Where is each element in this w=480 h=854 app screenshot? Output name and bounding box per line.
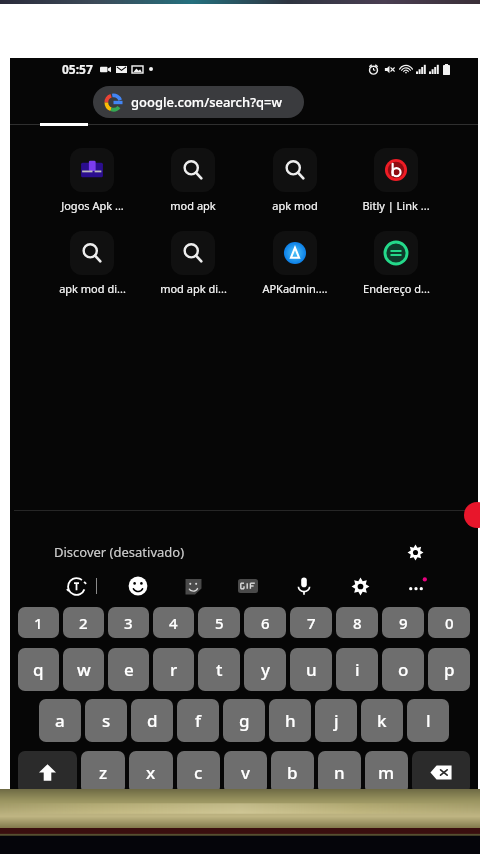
button[interactable]: k — [361, 699, 403, 742]
staticText: p — [444, 658, 455, 681]
button[interactable]: v — [224, 751, 267, 794]
button[interactable]: n — [318, 751, 361, 794]
button[interactable]: google.com/search?q=w — [93, 86, 304, 118]
staticText: l — [426, 709, 431, 732]
button[interactable]: 9 — [382, 607, 424, 638]
button[interactable]: m — [365, 751, 408, 794]
staticText: w — [77, 658, 91, 681]
button[interactable]: q — [18, 648, 59, 691]
staticText: Bitly | Link ... — [362, 198, 430, 213]
button[interactable]: d — [131, 699, 173, 742]
button[interactable]: j — [315, 699, 357, 742]
button[interactable]: Discover settings — [402, 539, 428, 565]
staticText: d — [147, 709, 158, 732]
button[interactable]: Bitly | Link ... — [356, 146, 436, 215]
staticText: o — [398, 658, 409, 681]
button[interactable]: GIF — [234, 572, 262, 600]
staticText: u — [306, 658, 317, 681]
staticText: 2 — [79, 613, 88, 633]
staticText: mod apk — [170, 198, 216, 213]
staticText: a — [55, 709, 65, 732]
staticText: i — [355, 658, 360, 681]
button[interactable]: Backspace — [412, 751, 470, 794]
staticText: g — [239, 709, 250, 732]
button[interactable]: 6 — [244, 607, 286, 638]
staticText: apk mod — [272, 198, 318, 213]
staticText: APKadmin.... — [262, 281, 328, 296]
staticText: t — [216, 658, 223, 681]
button[interactable]: p — [428, 648, 470, 691]
staticText: 6 — [261, 613, 270, 633]
staticText: apk mod di... — [59, 281, 126, 296]
button[interactable]: g — [223, 699, 265, 742]
staticText: 3 — [124, 613, 133, 633]
button[interactable]: 0 — [428, 607, 470, 638]
button[interactable]: t — [198, 648, 240, 691]
button[interactable]: x — [129, 751, 173, 794]
button[interactable]: Stickers — [179, 572, 207, 600]
staticText: 5 — [215, 613, 224, 633]
staticText: h — [285, 709, 296, 732]
button[interactable]: b — [271, 751, 314, 794]
button[interactable]: apk mod — [255, 146, 335, 215]
button[interactable]: s — [85, 699, 127, 742]
button[interactable]: 8 — [336, 607, 378, 638]
button[interactable]: y — [244, 648, 286, 691]
staticText: 1 — [34, 613, 43, 633]
button[interactable]: Translate — [62, 572, 90, 600]
staticText: e — [124, 658, 134, 681]
staticText: z — [99, 761, 108, 784]
staticText: y — [261, 658, 270, 681]
button[interactable]: z — [81, 751, 125, 794]
staticText: j — [334, 709, 339, 732]
staticText: 4 — [169, 613, 178, 633]
button[interactable]: w — [63, 648, 104, 691]
button[interactable]: Keyboard settings — [346, 572, 374, 600]
button[interactable]: a — [39, 699, 81, 742]
button[interactable]: More options — [402, 572, 430, 600]
button[interactable]: Shift — [18, 751, 77, 794]
staticText: 9 — [399, 613, 408, 633]
staticText: k — [377, 709, 387, 732]
button[interactable]: 3 — [108, 607, 149, 638]
button[interactable]: h — [269, 699, 311, 742]
button[interactable]: mod apk — [153, 146, 233, 215]
staticText: 05:57 — [62, 61, 93, 77]
staticText: m — [378, 761, 395, 784]
button[interactable]: c — [177, 751, 220, 794]
staticText: Discover (desativado) — [54, 543, 185, 561]
staticText: c — [194, 761, 203, 784]
button[interactable]: l — [407, 699, 449, 742]
button[interactable]: i — [336, 648, 378, 691]
staticText: 8 — [353, 613, 362, 633]
button[interactable]: r — [153, 648, 194, 691]
button[interactable]: APKadmin.... — [255, 229, 335, 298]
button[interactable]: apk mod di... — [52, 229, 132, 298]
staticText: Jogos Apk ... — [61, 198, 124, 213]
button[interactable]: 1 — [18, 607, 59, 638]
button[interactable]: 4 — [153, 607, 194, 638]
button[interactable]: u — [290, 648, 332, 691]
button[interactable]: 2 — [63, 607, 104, 638]
staticText: s — [102, 709, 111, 732]
staticText: b — [287, 761, 298, 784]
button[interactable]: mod apk di... — [153, 229, 233, 298]
button[interactable]: Emoji — [124, 572, 152, 600]
button[interactable]: Endereço d... — [356, 229, 436, 298]
button[interactable]: o — [382, 648, 424, 691]
staticText: f — [195, 709, 202, 732]
button[interactable]: e — [108, 648, 149, 691]
button[interactable]: 7 — [290, 607, 332, 638]
staticText: r — [170, 658, 178, 681]
staticText: 0 — [445, 613, 454, 633]
staticText: google.com/search?q=w — [131, 93, 282, 111]
staticText: 7 — [307, 613, 316, 633]
button[interactable]: 5 — [198, 607, 240, 638]
button[interactable]: Jogos Apk ... — [52, 146, 132, 215]
button[interactable]: Voice input — [290, 572, 318, 600]
staticText: mod apk di... — [160, 281, 227, 296]
staticText: x — [146, 761, 156, 784]
staticText: Endereço d... — [363, 281, 430, 296]
staticText: q — [33, 658, 44, 681]
button[interactable]: f — [177, 699, 219, 742]
